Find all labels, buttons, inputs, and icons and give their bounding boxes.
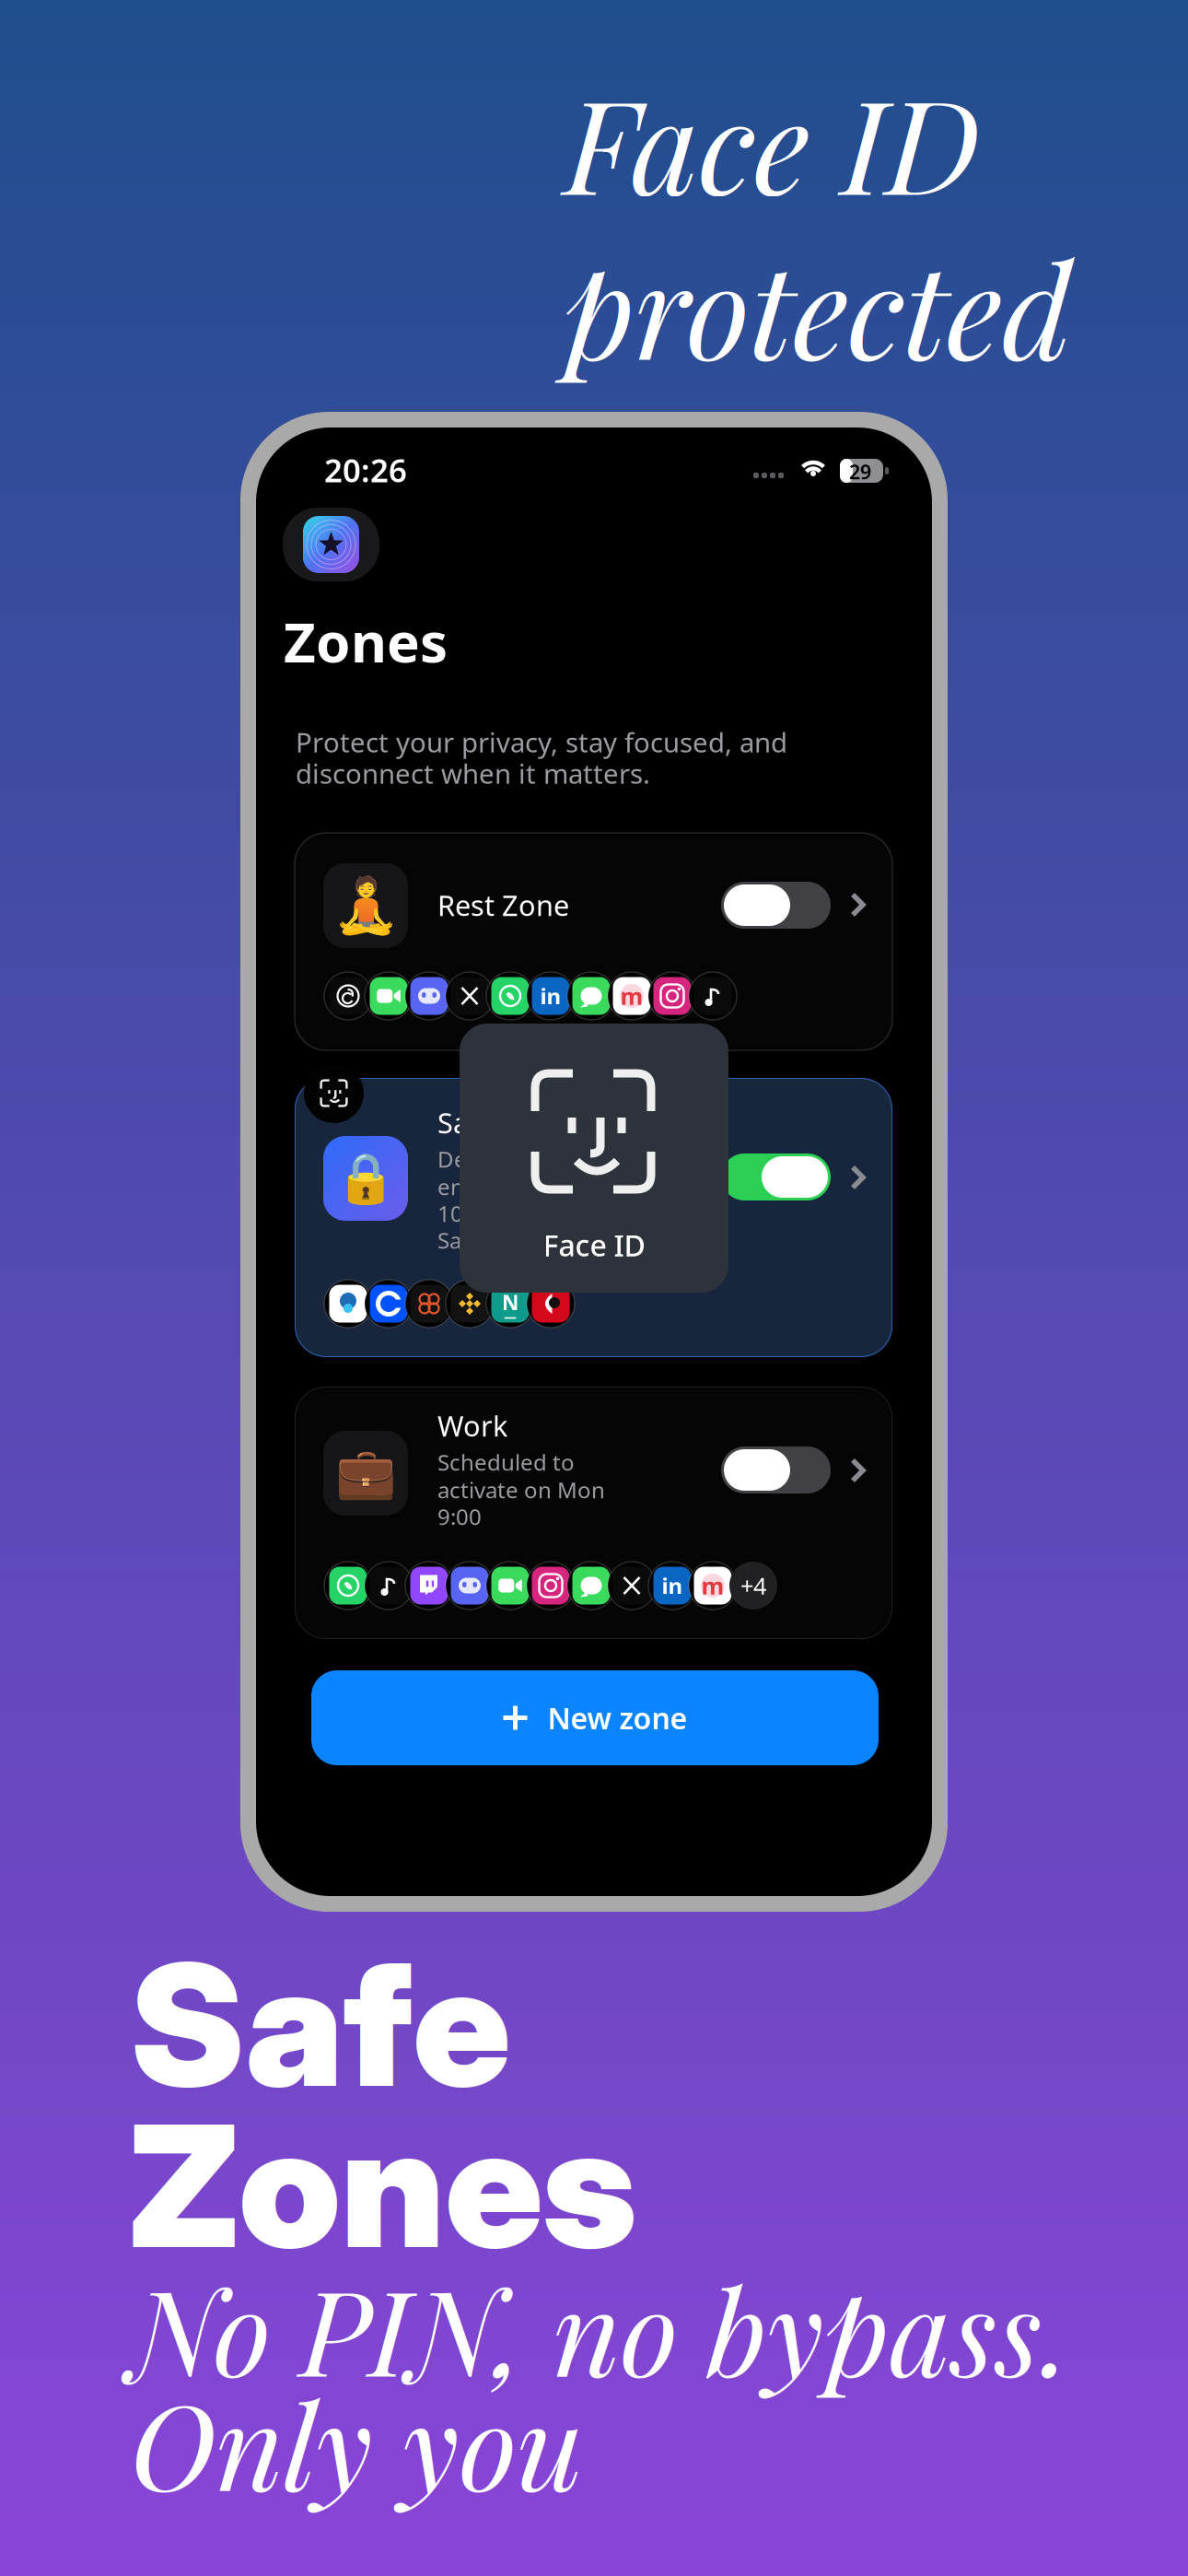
button[interactable]: 💼 (295, 1387, 892, 1639)
staticText: m (620, 980, 643, 1011)
staticText: Scheduled to (437, 1447, 575, 1477)
staticText: Safe (130, 1923, 510, 2126)
staticText: disconnect when it matters. (296, 755, 650, 791)
staticText: New zone (547, 1698, 687, 1737)
staticText: 🔒 (335, 1150, 396, 1206)
staticText: Saturday (437, 1225, 529, 1255)
staticText: Work (437, 1407, 507, 1444)
staticText: enabled every day at (437, 1172, 652, 1201)
button[interactable]: New zone (311, 1670, 879, 1765)
staticText: Rest Zone (437, 886, 569, 924)
staticText: activate on Mon (437, 1475, 605, 1504)
staticText: 💼 (335, 1445, 396, 1501)
staticText: Face ID (565, 55, 980, 227)
button[interactable]: 🔒 (295, 1078, 892, 1357)
staticText: Deep focus session, (437, 1144, 643, 1174)
staticText: N (502, 1289, 518, 1316)
staticText: 29 (849, 459, 871, 485)
staticText: Zones (284, 604, 448, 678)
staticText: Protect your privacy, stay focused, and (296, 724, 787, 760)
staticText: +4 (740, 1570, 766, 1601)
staticText: Face ID (543, 1225, 645, 1265)
staticText: 20:26 (324, 449, 407, 491)
staticText: in (662, 1571, 683, 1600)
staticText: 9:00 (437, 1502, 482, 1531)
staticText: in (540, 981, 561, 1011)
staticText: Only you (130, 2363, 584, 2520)
button[interactable]: 🧘 (295, 833, 892, 1050)
staticText: 🧘 (332, 875, 399, 937)
staticText: protected (564, 220, 1072, 392)
staticText: Safe (437, 1104, 495, 1141)
staticText: No PIN, no bypass. (130, 2249, 1070, 2406)
staticText: 10:00 PM until (437, 1199, 587, 1228)
staticText: Zones (129, 2084, 636, 2288)
staticText: m (701, 1570, 724, 1601)
